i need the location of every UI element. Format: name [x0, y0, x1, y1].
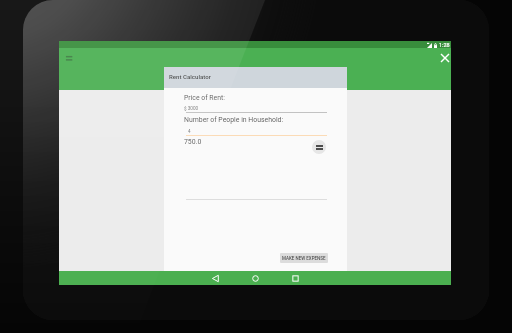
- button[interactable]: Menu: [60, 49, 76, 65]
- button[interactable]: Equals: [312, 140, 326, 154]
- button[interactable]: Back: [208, 271, 222, 285]
- staticText: MAKE NEW EXPENSE: [282, 256, 326, 261]
- button[interactable]: Close: [437, 50, 453, 66]
- button[interactable]: Home: [248, 271, 262, 285]
- staticText: Rent Calculator: [169, 73, 211, 80]
- staticText: Number of People in Household:: [184, 116, 284, 124]
- button[interactable]: MAKE NEW EXPENSE: [280, 253, 328, 263]
- staticText: 4: [188, 129, 191, 134]
- staticText: 1:28: [439, 42, 450, 48]
- staticText: 750.0: [184, 138, 202, 146]
- button[interactable]: Recents: [288, 271, 302, 285]
- staticText: $ 3000: [184, 106, 199, 111]
- staticText: Price of Rent:: [184, 94, 225, 102]
